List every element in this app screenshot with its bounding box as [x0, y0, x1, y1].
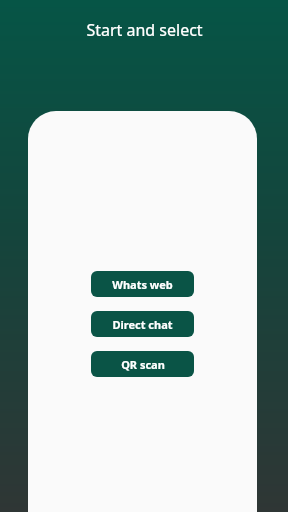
staticText: Direct chat — [112, 317, 173, 332]
button[interactable]: Direct chat — [91, 311, 194, 337]
staticText: Whats web — [112, 277, 173, 292]
staticText: Start and select — [86, 19, 203, 41]
button[interactable]: Whats web — [91, 271, 194, 297]
button[interactable]: QR scan — [91, 351, 194, 377]
staticText: QR scan — [121, 357, 165, 372]
